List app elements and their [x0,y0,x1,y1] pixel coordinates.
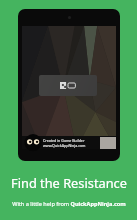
other: QuickAppNinja logo [23,132,41,149]
staticText: Created in Game Builder [43,138,85,143]
staticText: With a little help from QuickAppNinja.co… [12,200,126,208]
staticText: Find the Resistance [11,174,127,191]
button[interactable] [22,136,116,149]
staticText: www.QuickAppNinja.com [43,143,86,148]
button[interactable] [39,75,97,96]
